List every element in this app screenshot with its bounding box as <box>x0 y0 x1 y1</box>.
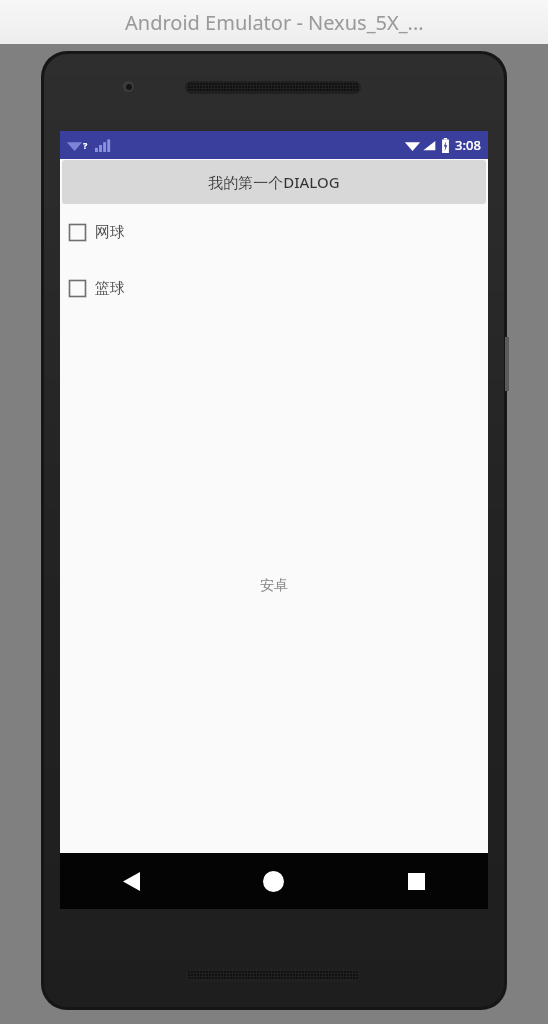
button[interactable]: Home <box>202 853 345 909</box>
staticText: 3:08 <box>455 136 481 154</box>
button[interactable]: 网球 <box>60 214 488 250</box>
button[interactable]: Back <box>60 853 202 909</box>
staticText: 安卓 <box>260 577 288 595</box>
staticText: 我的第一个DIALOG <box>208 172 340 192</box>
button[interactable]: 我的第一个DIALOG <box>62 160 486 204</box>
staticText: ? <box>83 139 88 151</box>
staticText: Android Emulator - Nexus_5X_... <box>125 9 424 36</box>
button[interactable]: Recents <box>345 853 488 909</box>
staticText: 篮球 <box>95 279 125 298</box>
staticText: 网球 <box>95 223 125 242</box>
button[interactable]: 篮球 <box>60 270 488 306</box>
